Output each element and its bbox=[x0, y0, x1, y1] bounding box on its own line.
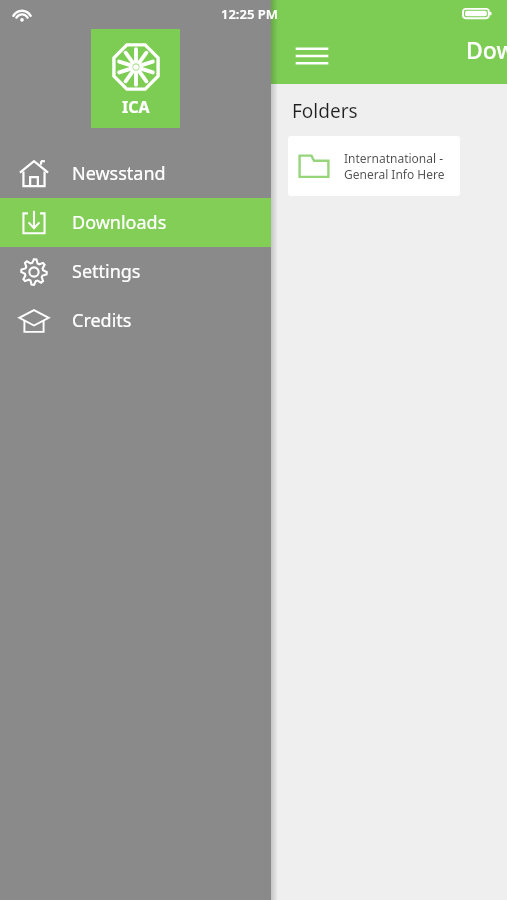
button[interactable]: Open navigation menu bbox=[288, 32, 336, 80]
button[interactable]: Newsstand bbox=[0, 149, 271, 198]
staticText: Downloads bbox=[72, 210, 167, 235]
staticText: Settings bbox=[72, 259, 141, 284]
button[interactable]: Internatnational - General Info Here bbox=[288, 136, 460, 196]
button[interactable]: Credits bbox=[0, 296, 271, 345]
staticText: Folders bbox=[292, 98, 358, 124]
staticText: Credits bbox=[72, 308, 132, 333]
staticText: ICA bbox=[122, 96, 150, 118]
staticText: Newsstand bbox=[72, 161, 166, 186]
staticText: Downloads bbox=[466, 34, 507, 65]
staticText: 12:25 PM bbox=[221, 5, 278, 23]
button[interactable]: Downloads bbox=[0, 198, 271, 247]
staticText: Internatnational - General Info Here bbox=[344, 150, 450, 182]
button[interactable]: Settings bbox=[0, 247, 271, 296]
